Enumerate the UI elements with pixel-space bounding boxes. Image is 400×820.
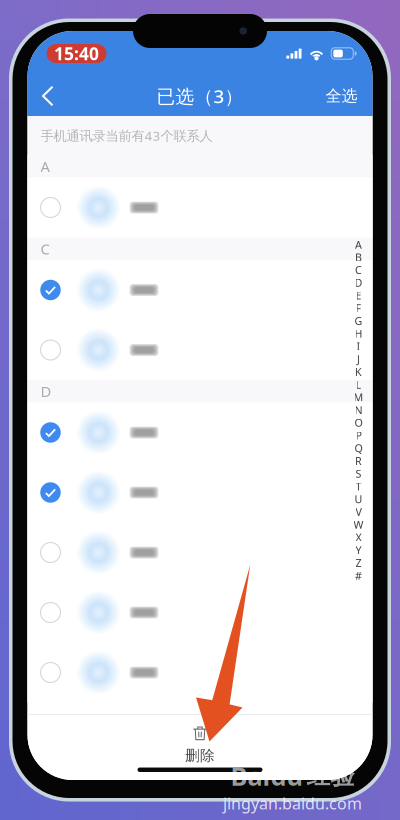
staticText: K (355, 365, 362, 379)
button[interactable] (27, 522, 372, 582)
staticText: C (40, 239, 49, 258)
staticText: S (355, 467, 361, 481)
button[interactable] (27, 320, 372, 380)
staticText: 15:40 (54, 42, 99, 65)
staticText: W (353, 517, 363, 532)
staticText: 已选（3） (156, 84, 243, 108)
staticText: Z (355, 556, 361, 570)
staticText: C (355, 263, 362, 277)
button[interactable] (27, 582, 372, 642)
staticText: E (355, 288, 361, 302)
staticText: # (355, 568, 362, 583)
staticText: 经验 (306, 761, 354, 791)
staticText: L (355, 377, 361, 392)
staticText: 手机通讯录当前有43个联系人 (40, 127, 212, 144)
button[interactable]: Back (27, 72, 70, 116)
staticText: T (355, 479, 361, 493)
staticText: M (353, 390, 363, 404)
staticText: V (355, 505, 361, 519)
button[interactable]: 全选 (310, 72, 372, 116)
button[interactable] (27, 177, 372, 237)
staticText: U (354, 492, 362, 506)
staticText: B (355, 250, 362, 264)
staticText: Q (354, 441, 362, 455)
staticText: A (40, 156, 49, 176)
staticText: O (354, 416, 362, 430)
staticText: D (40, 381, 51, 401)
staticText: A (355, 237, 362, 252)
staticText: X (355, 530, 361, 544)
staticText: N (354, 403, 362, 417)
button[interactable] (27, 260, 372, 320)
staticText: Y (355, 543, 361, 557)
button[interactable] (27, 402, 372, 462)
staticText: H (354, 326, 362, 341)
staticText: I (356, 339, 360, 353)
staticText: G (354, 314, 362, 328)
staticText: jingyan.baidu.com (223, 793, 362, 814)
button[interactable] (27, 642, 372, 702)
staticText: 全选 (325, 86, 357, 106)
staticText: J (357, 352, 360, 366)
staticText: D (354, 276, 362, 290)
button[interactable]: 删除 (145, 724, 255, 766)
staticText: P (355, 428, 361, 443)
staticText: R (355, 454, 362, 468)
button[interactable]: Alphabet index (351, 238, 372, 582)
staticText: Baidu (230, 759, 302, 793)
button[interactable] (27, 462, 372, 522)
staticText: 删除 (185, 746, 215, 764)
staticText: F (355, 301, 361, 315)
